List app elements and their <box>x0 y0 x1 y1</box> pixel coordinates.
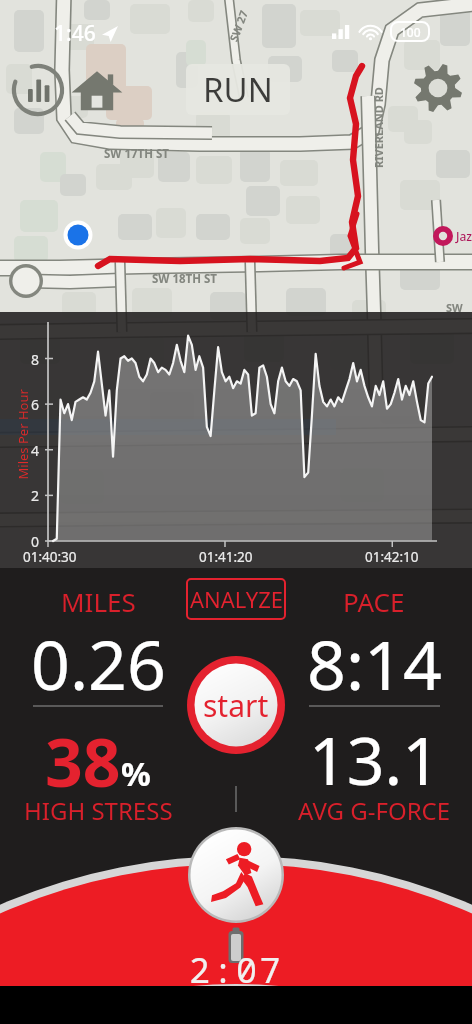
staticText: SW 17TH ST <box>104 146 169 162</box>
staticText: 100 <box>400 24 421 40</box>
staticText: RIVERLAND RD <box>371 87 386 168</box>
button[interactable]: PACE <box>276 584 472 619</box>
button[interactable]: AVG G-FORCE <box>276 794 472 827</box>
button[interactable]: HIGH STRESS <box>0 794 196 827</box>
staticText: 0 <box>31 532 40 551</box>
staticText: 6 <box>31 395 40 414</box>
staticText: 38 <box>45 716 121 806</box>
staticText: Jaz <box>456 228 472 244</box>
staticText: 4 <box>31 441 40 460</box>
button[interactable]: Settings <box>412 62 464 114</box>
button[interactable]: Statistics <box>10 62 66 118</box>
button[interactable]: RUN <box>186 64 290 115</box>
button[interactable]: MILES <box>0 584 196 619</box>
staticText: ANALYZE <box>190 584 283 614</box>
staticText: 01:42:10 <box>365 548 419 566</box>
button[interactable]: start <box>187 656 285 754</box>
staticText: % <box>121 751 151 796</box>
staticText: SW 27 <box>226 7 251 43</box>
button[interactable]: Home <box>70 64 124 116</box>
staticText: SW 18TH ST <box>152 271 217 287</box>
staticText: 8:14 <box>307 617 442 710</box>
staticText: 0.26 <box>31 617 166 710</box>
staticText: RUN <box>203 67 273 112</box>
staticText: AVG G-FORCE <box>298 794 451 827</box>
staticText: HIGH STRESS <box>24 794 173 827</box>
staticText: 8 <box>31 350 40 369</box>
staticText: 2 <box>31 486 40 505</box>
staticText: SW <box>446 300 463 315</box>
staticText: start <box>203 685 269 726</box>
staticText: MILES <box>61 584 136 619</box>
staticText: Miles Per Hour <box>13 388 31 479</box>
staticText: 13.1 <box>309 714 440 804</box>
button[interactable]: Activity type running <box>188 827 284 923</box>
button[interactable]: ANALYZE <box>186 578 286 620</box>
staticText: PACE <box>343 584 405 619</box>
staticText: 01:40:30 <box>23 548 77 566</box>
staticText: 1:46 <box>54 19 96 48</box>
staticText: 01:41:20 <box>199 548 253 566</box>
staticText: 2:07 <box>189 946 284 994</box>
